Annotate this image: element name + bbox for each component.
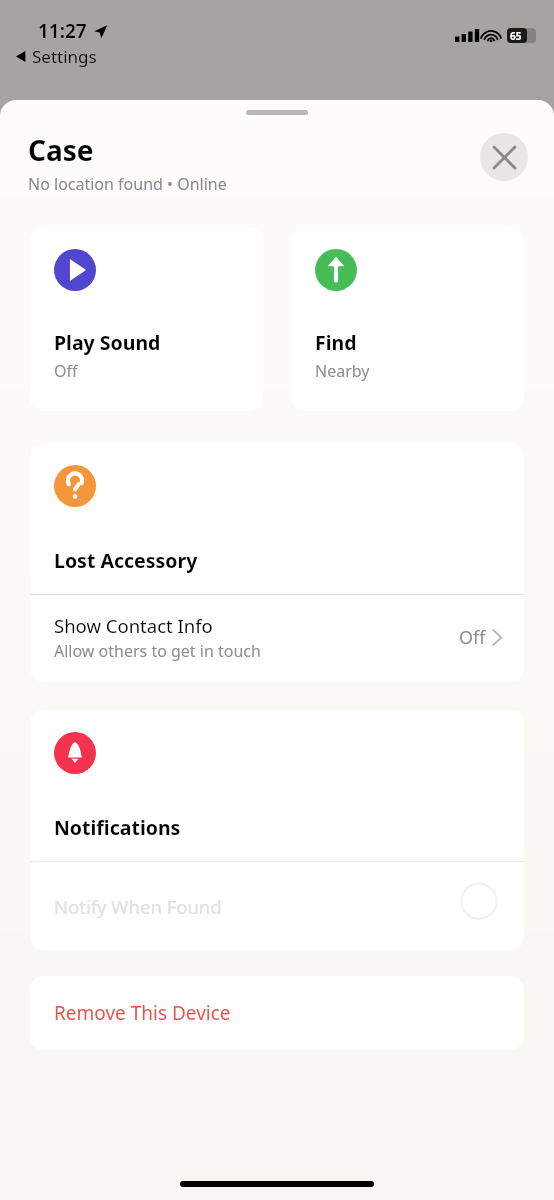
staticText: Remove This Device	[54, 1000, 231, 1026]
button[interactable]: Remove This Device	[30, 976, 524, 1050]
button[interactable]: Show Contact Info	[30, 595, 524, 682]
button[interactable]: Find	[291, 227, 524, 411]
button[interactable]: Play Sound	[30, 227, 263, 411]
staticText: Find	[315, 329, 357, 356]
button[interactable]: Lost Accessory	[30, 443, 524, 594]
staticText: Show Contact Info	[54, 613, 213, 638]
staticText: Case	[28, 131, 94, 169]
staticText: No location found • Online	[28, 173, 227, 195]
button[interactable]: Notify When Found	[30, 862, 524, 950]
staticText: Allow others to get in touch	[54, 640, 261, 662]
button[interactable]: Notifications	[30, 710, 524, 861]
staticText: Nearby	[315, 360, 370, 382]
staticText: Off	[54, 360, 78, 382]
staticText: 11:27	[38, 18, 87, 44]
staticText: Play Sound	[54, 329, 161, 356]
button[interactable]: Close	[480, 133, 528, 181]
staticText: Off	[459, 625, 486, 650]
staticText: Notifications	[54, 814, 181, 841]
staticText: Lost Accessory	[54, 547, 198, 574]
staticText: 65	[510, 29, 522, 43]
staticText: Settings	[32, 45, 97, 68]
button[interactable]: Settings	[16, 45, 97, 68]
staticText: Notify When Found	[54, 894, 454, 919]
